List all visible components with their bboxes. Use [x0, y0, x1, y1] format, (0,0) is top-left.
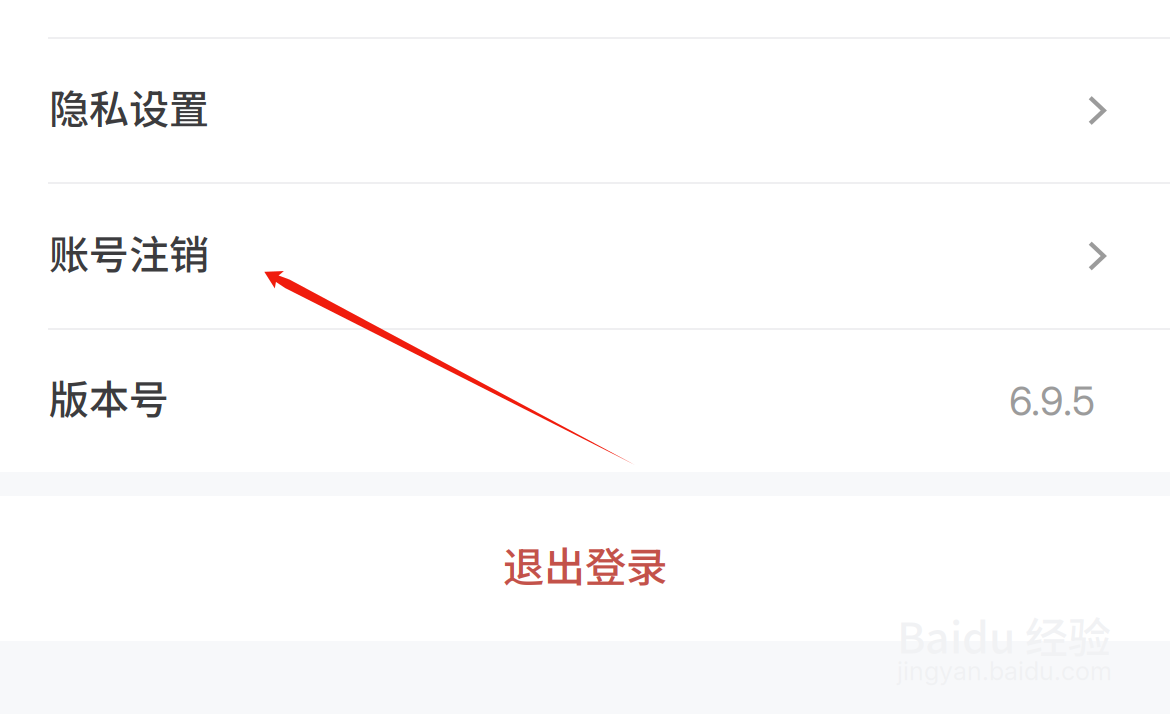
staticText: Baidu 经验 [897, 604, 1111, 666]
staticText: 退出登录 [503, 535, 667, 594]
button[interactable]: 退出登录 [0, 496, 1170, 641]
staticText: 账号注销 [49, 223, 209, 281]
button[interactable]: 账号注销 [0, 184, 1170, 328]
staticText: 版本号 [49, 368, 169, 426]
staticText: 隐私设置 [49, 77, 209, 135]
staticText: 6.9.5 [1009, 377, 1095, 425]
button[interactable]: 隐私设置 [0, 39, 1170, 182]
